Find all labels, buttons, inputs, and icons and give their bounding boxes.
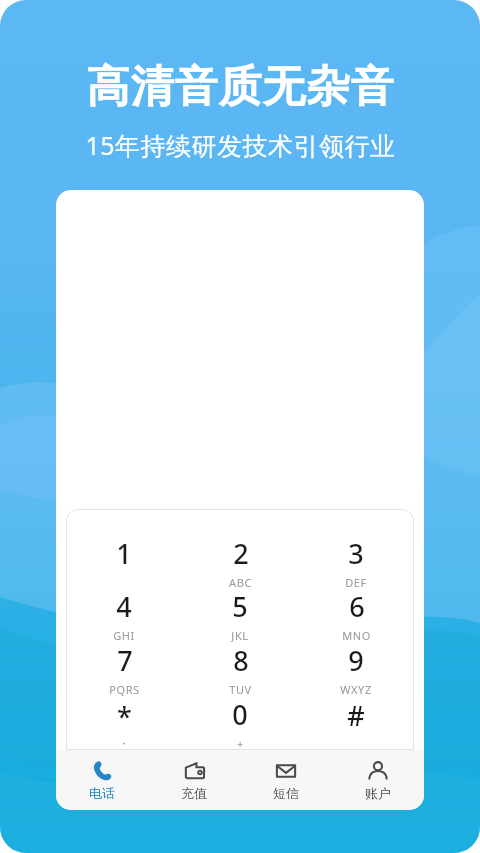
staticText: 0 [232, 696, 248, 733]
staticText: + [237, 736, 244, 750]
staticText: 充值 [181, 785, 207, 801]
staticText: 短信 [273, 785, 299, 801]
button[interactable]: 2 [182, 535, 298, 588]
staticText: # [347, 697, 365, 734]
button[interactable]: 6 [298, 588, 414, 642]
button[interactable]: 3 [298, 535, 414, 588]
staticText: 5 [232, 588, 248, 625]
staticText: 2 [233, 535, 249, 572]
button[interactable]: 短信 [240, 750, 332, 810]
button[interactable]: 9 [298, 642, 414, 696]
staticText: ABC [229, 575, 252, 588]
button[interactable]: 电话 [56, 750, 148, 810]
button[interactable]: 8 [182, 642, 298, 696]
staticText: 6 [349, 588, 365, 625]
button[interactable]: 4 [66, 588, 182, 642]
staticText: PQRS [109, 682, 140, 696]
button[interactable]: * [66, 696, 182, 750]
staticText: 7 [117, 642, 133, 679]
staticText: GHI [113, 628, 135, 642]
staticText: JKL [231, 628, 249, 642]
staticText: 8 [233, 642, 249, 679]
staticText: 4 [116, 588, 132, 625]
staticText: * [117, 698, 132, 735]
staticText: WXYZ [340, 682, 372, 696]
staticText: 3 [348, 535, 364, 572]
staticText: 电话 [89, 785, 115, 801]
staticText: DEF [345, 575, 367, 588]
button[interactable]: 5 [182, 588, 298, 642]
button[interactable]: 充值 [148, 750, 240, 810]
staticText: 高清音质无杂音 [86, 60, 394, 114]
button[interactable]: 1 [66, 535, 182, 588]
staticText: 9 [348, 642, 364, 679]
staticText: MNO [342, 628, 371, 642]
staticText: ･ [121, 738, 128, 749]
staticText: 账户 [365, 785, 391, 801]
staticText: TUV [229, 682, 252, 696]
staticText: 1 [116, 535, 132, 572]
button[interactable]: 7 [66, 642, 182, 696]
staticText: 15年持续研发技术引领行业 [85, 128, 396, 162]
button[interactable]: 0 [182, 696, 298, 750]
button[interactable]: # [298, 696, 414, 750]
button[interactable]: 账户 [332, 750, 424, 810]
